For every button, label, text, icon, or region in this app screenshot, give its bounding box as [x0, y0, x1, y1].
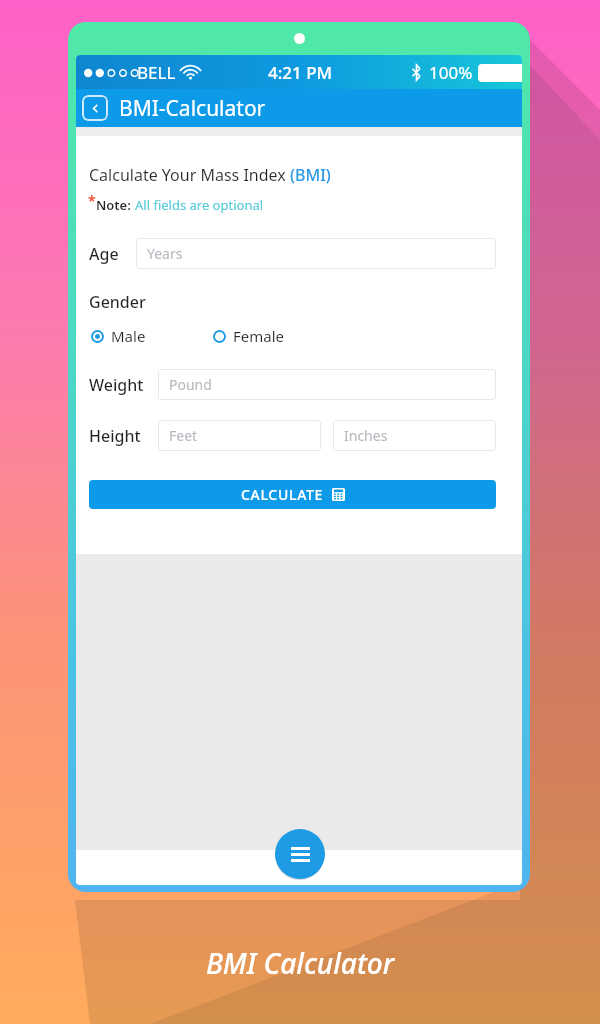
staticText: Male — [111, 326, 146, 346]
staticText: Age — [89, 243, 123, 265]
staticText: (BMI) — [290, 164, 331, 186]
staticText: BMI Calculator — [0, 944, 600, 982]
staticText: Note: — [96, 196, 135, 214]
button[interactable]: Years — [136, 238, 496, 269]
staticText: Female — [233, 326, 285, 346]
staticText: Gender — [89, 291, 146, 313]
button[interactable]: Pound — [158, 369, 496, 400]
button[interactable]: Inches — [333, 420, 496, 451]
button[interactable]: Male — [88, 324, 149, 348]
button[interactable]: Menu — [275, 829, 325, 879]
button[interactable]: Back — [82, 95, 108, 121]
button[interactable]: Feet — [158, 420, 321, 451]
staticText: * — [88, 191, 96, 210]
staticText: Calculate Your Mass Index — [89, 164, 290, 186]
staticText: 4:21 PM — [268, 61, 333, 84]
staticText: BMI-Calculator — [119, 94, 266, 123]
staticText: Years — [147, 244, 183, 263]
staticText: CALCULATE — [241, 485, 324, 504]
staticText: BELL — [137, 61, 176, 84]
staticText: Inches — [344, 426, 388, 445]
staticText: Pound — [169, 375, 212, 394]
staticText: 100% — [429, 61, 473, 84]
staticText: All fields are optional — [135, 196, 264, 214]
button[interactable]: CALCULATE — [89, 480, 496, 509]
staticText: Height — [89, 425, 146, 447]
staticText: Feet — [169, 426, 198, 445]
staticText: Weight — [89, 374, 146, 396]
button[interactable]: Female — [210, 324, 288, 348]
